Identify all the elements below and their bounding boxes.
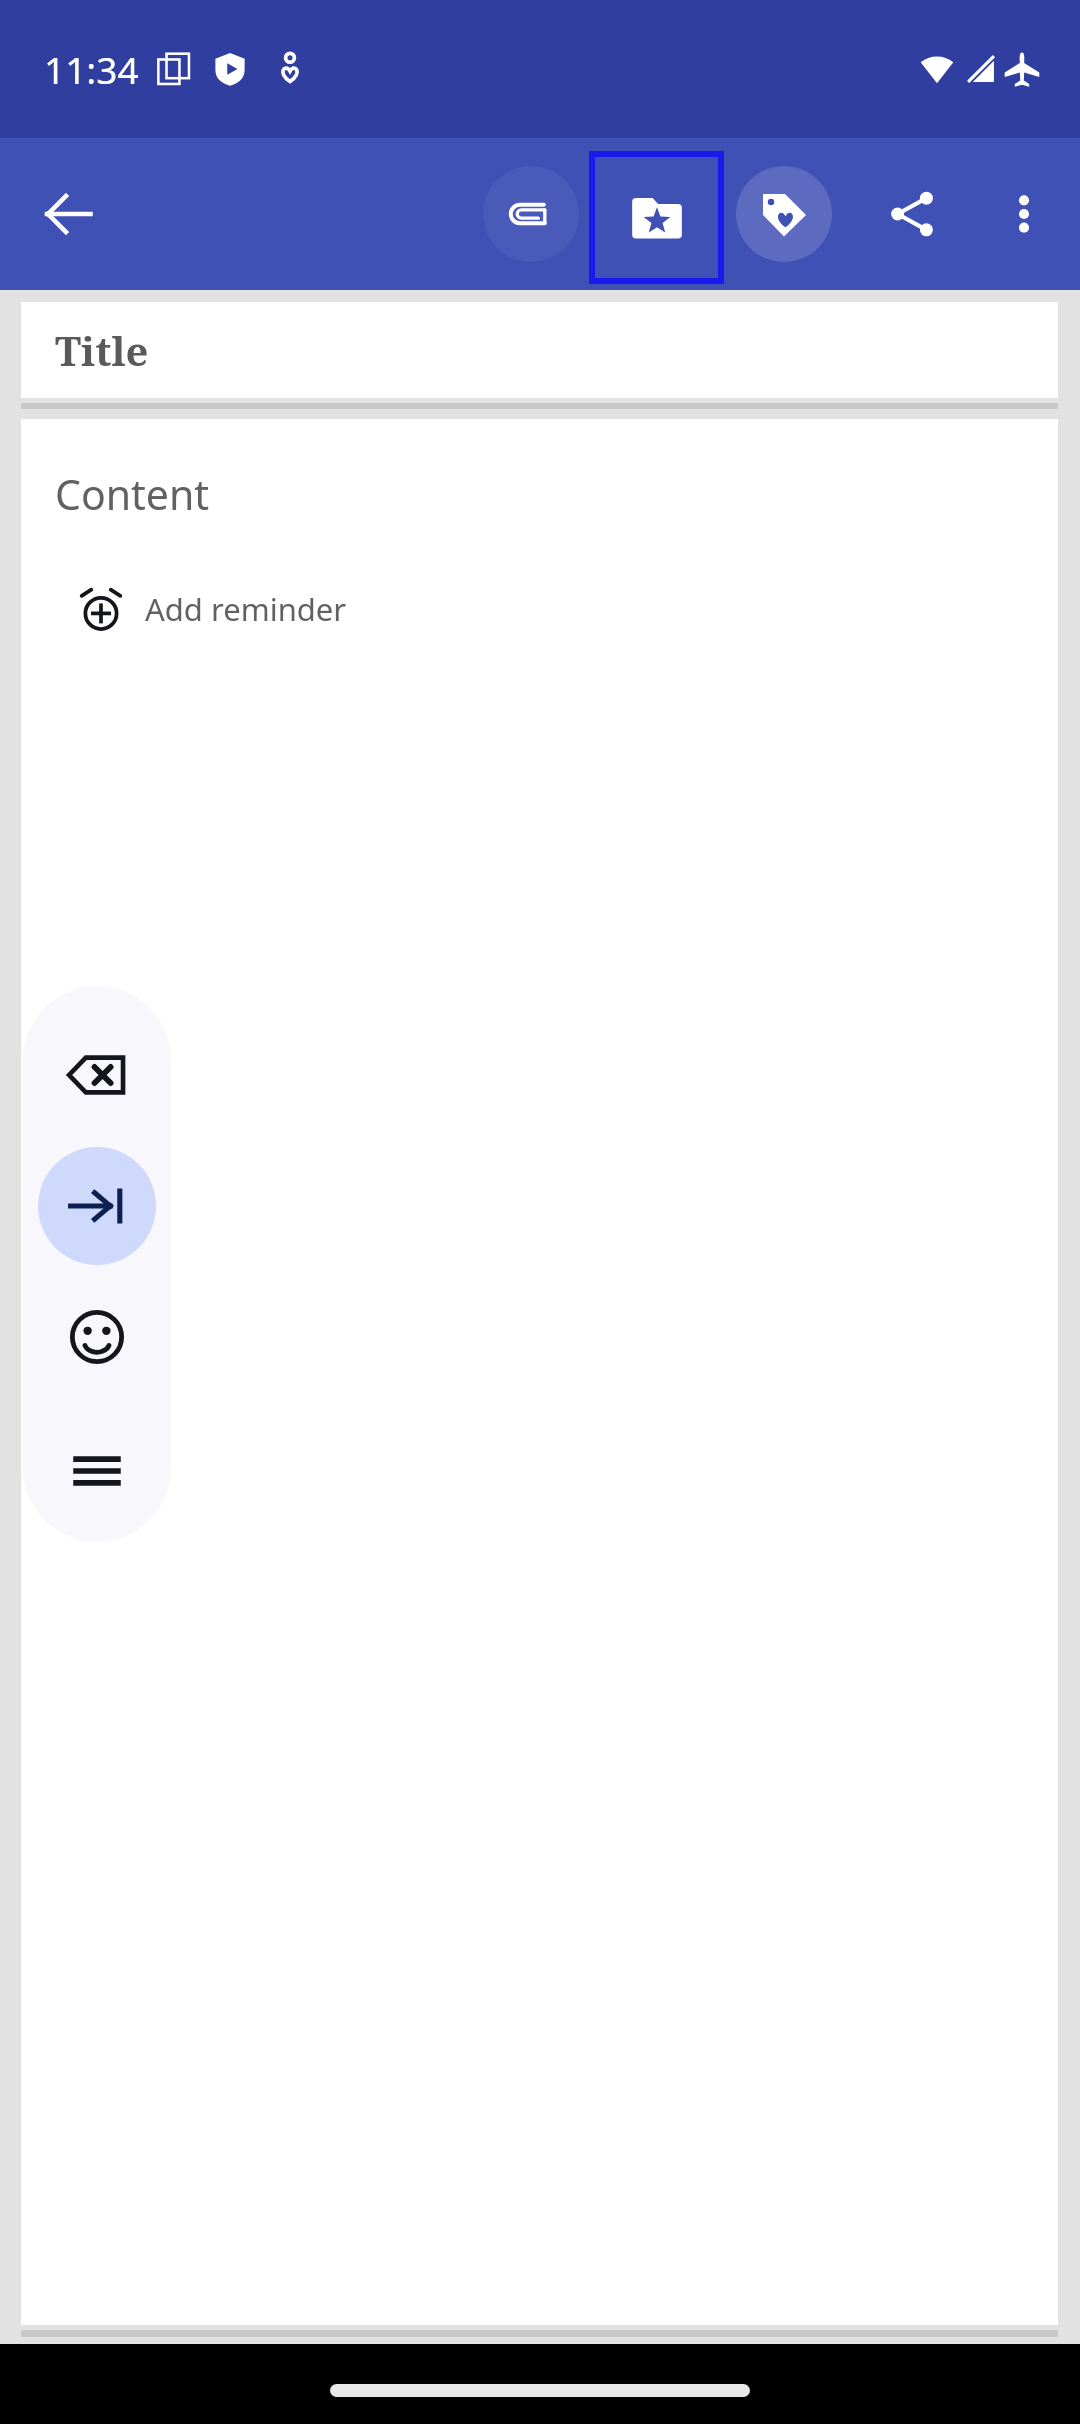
staticText: Title xyxy=(55,323,149,377)
button[interactable]: Backspace xyxy=(38,1016,156,1134)
button[interactable]: Attach file xyxy=(483,166,579,262)
button[interactable]: Content xyxy=(21,449,1058,539)
button[interactable]: More options xyxy=(976,166,1072,262)
button[interactable]: Labels xyxy=(736,166,832,262)
button[interactable]: Title xyxy=(21,302,1058,398)
staticText: Add reminder xyxy=(145,588,347,630)
staticText: 11:34 xyxy=(44,44,139,94)
button[interactable]: Emoji xyxy=(38,1278,156,1396)
staticText: Content xyxy=(55,466,210,522)
button[interactable]: Tab xyxy=(38,1147,156,1265)
button[interactable]: Move to folder xyxy=(595,157,718,278)
button[interactable]: Add reminder xyxy=(79,571,347,647)
button[interactable]: Menu xyxy=(38,1412,156,1530)
button[interactable]: Share xyxy=(864,166,960,262)
button[interactable]: Back xyxy=(20,166,116,262)
